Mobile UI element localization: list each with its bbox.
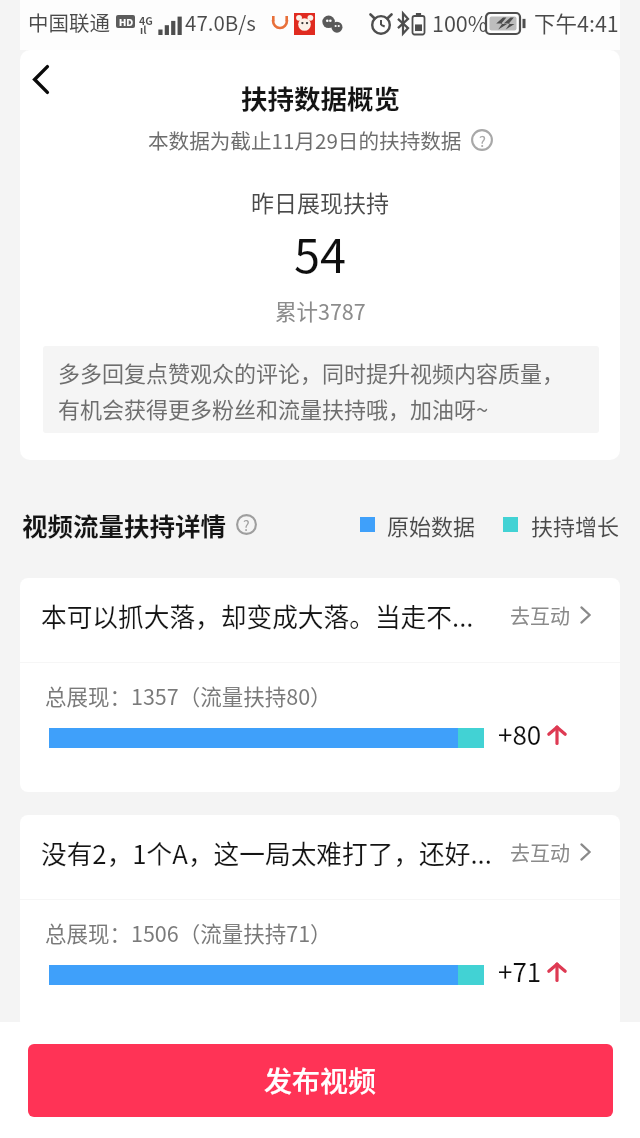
staticText: 发布视频 bbox=[264, 1060, 377, 1101]
button[interactable]: Help bbox=[471, 129, 493, 151]
staticText: 昨日展现扶持 bbox=[251, 185, 389, 218]
staticText: 累计3787 bbox=[275, 295, 366, 326]
staticText: 没有2，1个A，这一局太难打了，还好... bbox=[41, 834, 494, 871]
staticText: 本数据为截止11月29日的扶持数据 bbox=[148, 125, 462, 155]
staticText: 中国联通 bbox=[28, 7, 110, 37]
staticText: 扶持数据概览 bbox=[241, 78, 400, 116]
staticText: 总展现：1506（流量扶持71） bbox=[45, 917, 332, 948]
button[interactable]: Help bbox=[236, 514, 257, 535]
staticText: 去互动 bbox=[510, 838, 570, 867]
staticText: 去互动 bbox=[510, 601, 570, 630]
staticText: 多多回复点赞观众的评论，同时提升视频内容质量， bbox=[58, 356, 565, 388]
button[interactable]: 本可以抓大落，却变成大落。当走不... bbox=[20, 578, 620, 662]
staticText: ? bbox=[243, 515, 250, 535]
staticText: HD bbox=[119, 15, 133, 28]
staticText: 47.0B/s bbox=[185, 7, 256, 37]
staticText: +80 bbox=[498, 715, 542, 753]
staticText: +71 bbox=[498, 952, 542, 990]
staticText: 有机会获得更多粉丝和流量扶持哦，加油呀~ bbox=[58, 392, 489, 424]
staticText: ? bbox=[479, 130, 486, 151]
staticText: 4G bbox=[139, 13, 153, 28]
staticText: 总展现：1357（流量扶持80） bbox=[45, 680, 332, 711]
staticText: 视频流量扶持详情 bbox=[22, 506, 227, 543]
staticText: 54 bbox=[294, 218, 347, 278]
staticText: 扶持增长 bbox=[531, 509, 620, 541]
staticText: 下午4:41 bbox=[534, 7, 619, 38]
button[interactable]: Back bbox=[21, 59, 61, 99]
staticText: 100% bbox=[432, 7, 488, 38]
staticText: ıl bbox=[140, 22, 147, 37]
button[interactable]: 没有2，1个A，这一局太难打了，还好... bbox=[20, 815, 620, 899]
button[interactable]: 发布视频 bbox=[28, 1044, 613, 1117]
staticText: 本可以抓大落，却变成大落。当走不... bbox=[41, 597, 494, 634]
staticText: 原始数据 bbox=[387, 509, 476, 541]
